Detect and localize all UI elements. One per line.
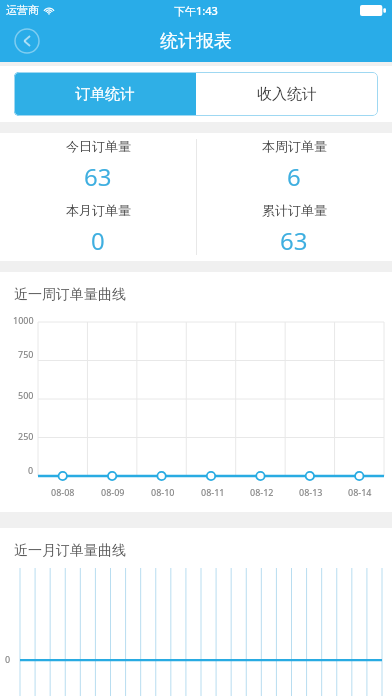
staticText: 1000 — [13, 314, 34, 326]
staticText: 08-10 — [151, 486, 175, 498]
staticText: 500 — [18, 389, 34, 401]
staticText: 统计报表 — [160, 30, 232, 53]
staticText: 250 — [18, 430, 34, 442]
button[interactable]: 今日订单量 — [0, 138, 196, 193]
staticText: 本月订单量 — [66, 202, 131, 218]
staticText: 收入统计 — [257, 85, 317, 104]
staticText: 本周订单量 — [262, 138, 327, 154]
staticText: 08-11 — [201, 486, 225, 498]
button[interactable]: Back — [13, 27, 41, 55]
staticText: 累计订单量 — [262, 202, 327, 218]
staticText: 08-12 — [250, 486, 274, 498]
staticText: 近一月订单量曲线 — [14, 542, 126, 560]
staticText: 750 — [18, 348, 34, 360]
staticText: 0 — [91, 224, 105, 257]
staticText: 63 — [84, 160, 112, 193]
staticText: 运营商 — [6, 3, 39, 17]
staticText: 08-14 — [348, 486, 372, 498]
staticText: 0 — [5, 653, 11, 665]
button[interactable]: 本周订单量 — [196, 138, 392, 193]
button[interactable]: 本月订单量 — [0, 202, 196, 257]
button[interactable]: 订单统计 — [14, 72, 196, 116]
staticText: 08-08 — [51, 486, 75, 498]
staticText: 08-13 — [299, 486, 323, 498]
staticText: 63 — [280, 224, 308, 257]
staticText: 0 — [28, 464, 34, 476]
staticText: 订单统计 — [75, 85, 135, 104]
staticText: 6 — [287, 160, 301, 193]
staticText: 今日订单量 — [66, 138, 131, 154]
staticText: 下午1:43 — [174, 3, 218, 18]
staticText: 近一周订单量曲线 — [14, 286, 126, 304]
button[interactable]: 收入统计 — [196, 72, 378, 116]
button[interactable]: 累计订单量 — [196, 202, 392, 257]
staticText: 08-09 — [101, 486, 125, 498]
